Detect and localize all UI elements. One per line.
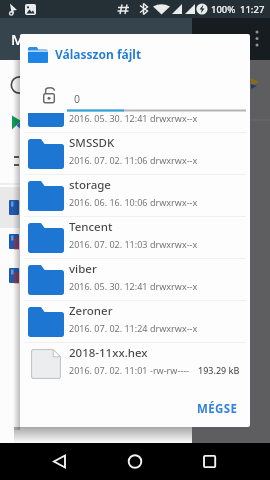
button[interactable]: Recent apps (192, 443, 228, 480)
staticText: drwxrwx--x (150, 238, 198, 250)
button[interactable]: storage (20, 175, 250, 217)
staticText: viber (69, 261, 97, 277)
staticText: MÉGSE (197, 401, 238, 417)
staticText: Válasszon fájlt (55, 46, 142, 62)
button[interactable]: Tencent (20, 217, 250, 259)
staticText: 2016. 06. 16. 10:06 (69, 196, 148, 208)
staticText: storage (69, 177, 111, 193)
staticText: 2016. 07. 02. 11:03 (69, 238, 148, 250)
staticText: 100% (211, 3, 236, 16)
staticText: drwxrwx--x (150, 113, 198, 124)
button[interactable]: 2018-11xx.hex (20, 343, 250, 385)
staticText: 0 (74, 92, 81, 106)
button[interactable]: Back (42, 443, 78, 480)
staticText: -rw-rw---- (150, 364, 189, 376)
button[interactable]: MÉGSE (187, 394, 248, 424)
staticText: SMSSDK (69, 135, 115, 151)
staticText: 2016. 07. 02. 11:24 (69, 322, 148, 334)
button[interactable]: Zeroner (20, 301, 250, 343)
staticText: 2016. 07. 02. 11:06 (69, 154, 148, 166)
staticText: drwxrwx--x (150, 196, 198, 208)
staticText: drwxrwx--x (150, 280, 198, 292)
button[interactable]: Home (117, 443, 153, 480)
staticText: 2016. 05. 30. 12:41 (69, 113, 148, 124)
staticText: drwxrwx--x (150, 322, 198, 334)
staticText: drwxrwx--x (150, 154, 198, 166)
staticText: 2016. 05. 30. 12:41 (69, 280, 148, 292)
staticText: 11:27 (240, 3, 265, 16)
staticText: Tencent (69, 219, 113, 235)
button[interactable]: viber (20, 259, 250, 301)
staticText: 2018-11xx.hex (69, 345, 148, 361)
button[interactable]: SMSSDK (20, 133, 250, 175)
button[interactable]: Sounds (20, 113, 250, 133)
staticText: Zeroner (69, 303, 113, 319)
staticText: 193.29 kB (198, 364, 240, 376)
staticText: Menü (11, 29, 53, 49)
staticText: 2016. 07. 02. 11:01 (69, 364, 148, 376)
